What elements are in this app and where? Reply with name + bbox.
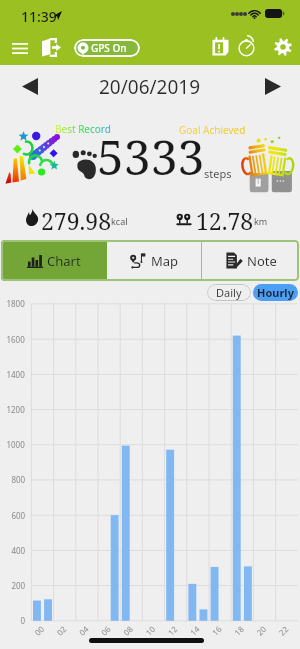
staticText: 11:39 — [21, 7, 57, 26]
button[interactable]: Note — [202, 240, 299, 281]
staticText: 5333 — [97, 124, 205, 189]
staticText: Map — [151, 252, 179, 270]
button[interactable]: GPS On — [74, 39, 140, 57]
button[interactable]: Settings — [273, 37, 292, 56]
button[interactable]: Daily — [207, 284, 251, 301]
button[interactable]: Previous day — [15, 71, 45, 101]
staticText: 20/06/2019 — [99, 74, 201, 100]
button[interactable]: Chart — [1, 240, 107, 281]
staticText: 279.98 — [41, 205, 112, 236]
staticText: Daily — [216, 285, 242, 300]
staticText: steps — [204, 166, 232, 181]
staticText: Hourly — [257, 285, 294, 300]
button[interactable]: Next day — [258, 71, 288, 101]
staticText: GPS On — [91, 41, 127, 55]
button[interactable]: Timer — [237, 37, 256, 56]
staticText: 12.78 — [196, 205, 254, 236]
button[interactable]: Diary — [209, 36, 232, 57]
button[interactable]: Hourly — [253, 284, 298, 301]
button[interactable]: Log out — [37, 33, 65, 61]
staticText: Best Record — [55, 122, 111, 136]
staticText: kcal — [111, 215, 128, 227]
staticText: km — [254, 215, 268, 227]
button[interactable]: Menu — [6, 34, 34, 62]
button[interactable]: Map — [107, 240, 201, 281]
staticText: Goal Achieved — [179, 123, 246, 137]
staticText: Chart — [47, 252, 81, 270]
staticText: Note — [247, 252, 277, 270]
